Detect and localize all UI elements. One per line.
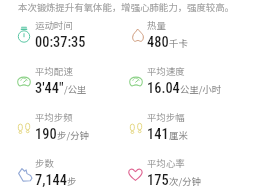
staticText: 步 [67,174,77,188]
staticText: /公里 [64,82,87,96]
other: 运动时间 [17,26,31,43]
other: 平均速度 [129,72,143,89]
staticText: 平均心率 [147,156,185,170]
staticText: 平均步频 [35,110,73,124]
staticText: 7,144 [35,172,67,189]
staticText: 热量 [147,18,166,32]
button[interactable]: 平均速度 [129,64,241,97]
button[interactable]: 平均步幅 [129,110,241,143]
staticText: 175 [147,172,169,189]
other: 平均心率 [129,164,143,181]
other: 平均步幅 [129,118,143,135]
button[interactable]: 步数 [17,156,129,189]
staticText: 480 [147,34,169,51]
staticText: 次/分钟 [169,174,201,188]
button[interactable]: 平均配速 [17,64,129,97]
staticText: 千卡 [169,36,188,50]
staticText: 步/分钟 [57,128,89,142]
staticText: 平均步幅 [147,110,185,124]
other: 步数 [17,164,31,181]
staticText: 运动时间 [35,18,73,32]
button[interactable]: 热量 [129,18,241,51]
other: 平均配速 [17,72,31,89]
staticText: 16.04 [147,80,180,97]
staticText: 公里/小时 [180,82,222,96]
staticText: 步数 [35,156,54,170]
staticText: 3'44" [35,80,64,97]
staticText: 00:37:35 [35,34,86,51]
staticText: 141 [147,126,169,143]
staticText: 本次锻炼提升有氧体能，增强心肺能力，强度较高。 [18,0,234,14]
button[interactable]: 平均心率 [129,156,241,189]
other: 平均步频 [17,118,31,135]
staticText: 平均速度 [147,64,185,78]
other: 热量 [129,26,143,43]
staticText: 190 [35,126,57,143]
button[interactable]: 运动时间 [17,18,129,51]
button[interactable]: 平均步频 [17,110,129,143]
staticText: 平均配速 [35,64,73,78]
staticText: 厘米 [169,128,188,142]
